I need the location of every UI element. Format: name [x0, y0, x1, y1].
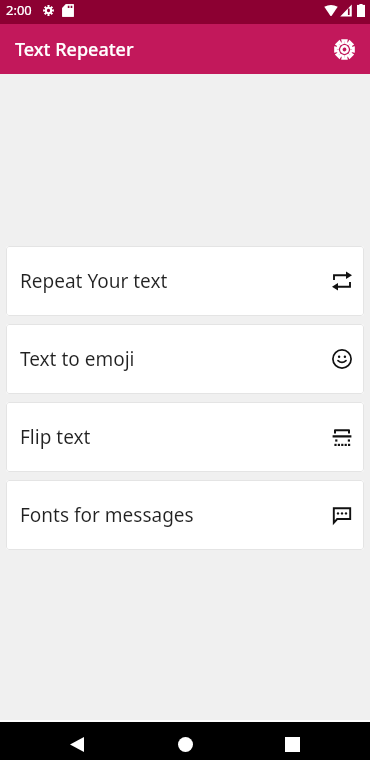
button[interactable]: Back: [55, 725, 99, 760]
button[interactable]: Settings: [325, 30, 363, 68]
button[interactable]: Text to emoji: [6, 324, 364, 394]
staticText: 2:00: [6, 1, 32, 19]
button[interactable]: Fonts for messages: [6, 480, 364, 550]
staticText: Text to emoji: [20, 346, 135, 372]
staticText: Fonts for messages: [20, 502, 194, 528]
staticText: Repeat Your text: [20, 268, 168, 294]
staticText: Flip text: [20, 424, 91, 450]
button[interactable]: Flip text: [6, 402, 364, 472]
button[interactable]: Repeat Your text: [6, 246, 364, 316]
button[interactable]: Home: [163, 725, 207, 760]
button[interactable]: Recents: [270, 725, 314, 760]
staticText: Text Repeater: [15, 37, 134, 62]
